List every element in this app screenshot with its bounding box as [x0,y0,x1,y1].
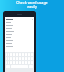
button[interactable] [5,42,34,45]
button[interactable] [5,33,34,36]
button[interactable] [5,27,34,30]
button[interactable] [5,39,34,42]
button[interactable] [5,30,34,33]
button[interactable] [5,24,34,27]
staticText: easily [27,4,37,9]
button[interactable] [5,17,34,21]
button[interactable] [5,36,34,39]
button[interactable] [5,45,34,48]
button[interactable] [5,21,34,24]
staticText: Check word usage [16,0,48,5]
